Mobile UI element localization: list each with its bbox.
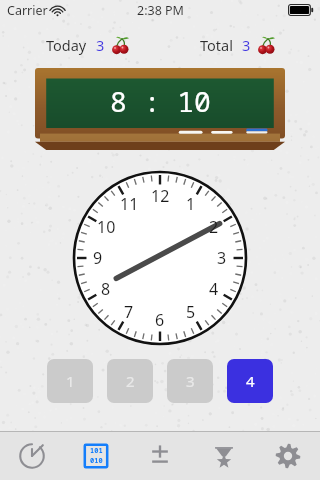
staticText: Today: [46, 35, 87, 55]
staticText: 4: [246, 371, 255, 391]
staticText: 10: [97, 216, 116, 238]
staticText: 2: [126, 371, 135, 391]
button[interactable]: Digits: [64, 432, 128, 480]
button[interactable]: Clock: [0, 432, 64, 480]
staticText: 3: [217, 247, 227, 269]
button[interactable]: Settings: [256, 432, 320, 480]
staticText: 3: [242, 35, 251, 55]
staticText: 2:38 PM: [137, 2, 184, 19]
staticText: Total: [200, 35, 233, 55]
button[interactable]: 1: [47, 359, 93, 403]
staticText: 3: [96, 35, 105, 55]
button[interactable]: 3: [167, 359, 213, 403]
staticText: 12: [151, 185, 170, 207]
staticText: 8 : 10: [110, 82, 211, 120]
staticText: 9: [93, 247, 103, 269]
staticText: 2: [209, 216, 219, 238]
staticText: 101: [90, 446, 103, 456]
staticText: 5: [186, 301, 196, 323]
button[interactable]: Awards: [192, 432, 256, 480]
staticText: 7: [124, 301, 134, 323]
button[interactable]: 2: [107, 359, 153, 403]
staticText: 1: [186, 193, 196, 215]
button[interactable]: 4: [227, 359, 273, 403]
staticText: 3: [186, 371, 195, 391]
staticText: 4: [209, 278, 219, 300]
staticText: Carrier: [7, 2, 48, 19]
staticText: 11: [120, 193, 139, 215]
staticText: 8: [101, 278, 111, 300]
button[interactable]: Plus Minus: [128, 432, 192, 480]
staticText: 6: [155, 309, 165, 331]
staticText: 1: [66, 371, 75, 391]
staticText: 010: [90, 456, 103, 466]
